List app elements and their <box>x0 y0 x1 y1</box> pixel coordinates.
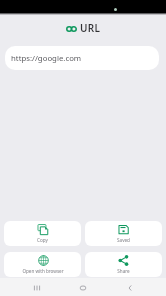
button[interactable]: Recent apps <box>25 279 49 296</box>
staticText: Saved <box>117 237 130 243</box>
button[interactable]: https://google.com <box>5 46 159 70</box>
button[interactable]: Copy <box>4 221 81 246</box>
staticText: https://google.com <box>11 53 82 64</box>
button[interactable]: Home <box>71 279 95 296</box>
button[interactable]: Open with browser <box>4 252 81 277</box>
button[interactable]: Save <box>85 221 162 246</box>
staticText: Share <box>117 268 130 274</box>
button[interactable]: Share <box>85 252 162 277</box>
staticText: Copy <box>37 237 48 243</box>
staticText: URL <box>80 21 101 33</box>
button[interactable]: Back <box>118 279 142 296</box>
staticText: Open with browser <box>22 268 64 274</box>
